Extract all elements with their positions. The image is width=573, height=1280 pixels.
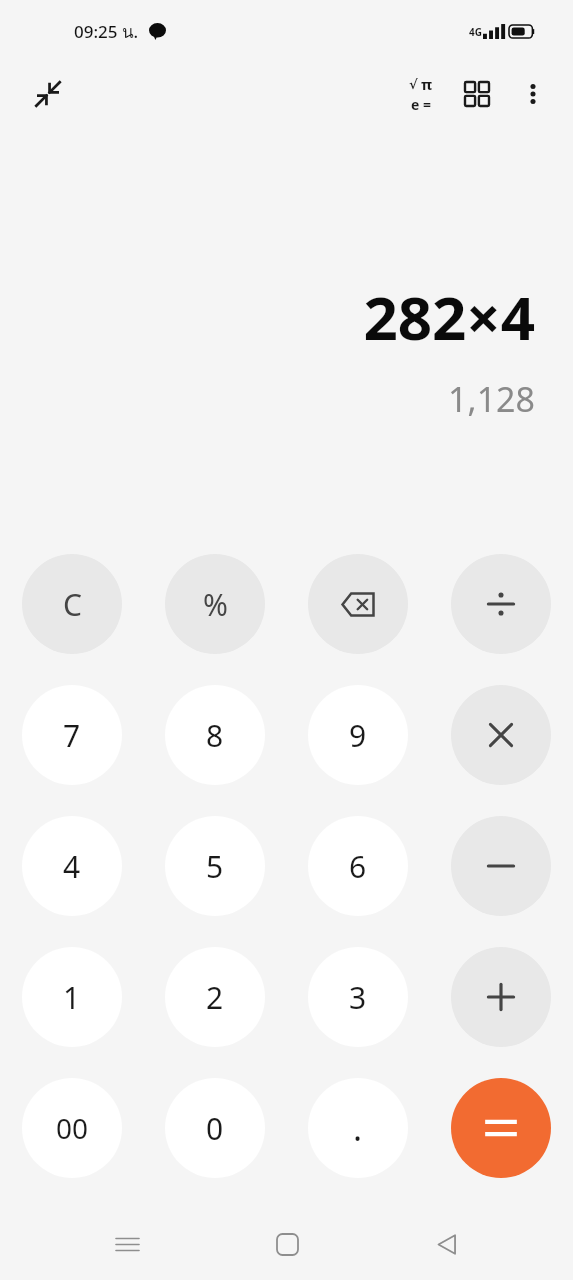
button[interactable]: 6 — [308, 816, 408, 916]
button[interactable]: Collapse — [22, 68, 74, 120]
button[interactable]: 9 — [308, 685, 408, 785]
button[interactable]: History grid — [449, 66, 505, 122]
staticText: 3 — [349, 977, 367, 1018]
staticText: = — [423, 95, 432, 114]
button[interactable]: Plus — [451, 947, 551, 1047]
staticText: 7 — [63, 715, 81, 756]
staticText: 00 — [56, 1109, 89, 1147]
button[interactable]: Multiply — [451, 685, 551, 785]
staticText: √ — [409, 77, 418, 92]
button[interactable]: Equals — [451, 1078, 551, 1178]
staticText: 282×4 — [363, 276, 535, 358]
button[interactable]: 00 — [22, 1078, 122, 1178]
staticText: 4 — [63, 846, 81, 887]
button[interactable]: Backspace — [308, 554, 408, 654]
staticText: 09:25 น. — [74, 18, 139, 45]
button[interactable]: Divide — [451, 554, 551, 654]
staticText: 2 — [206, 977, 224, 1018]
button[interactable]: 7 — [22, 685, 122, 785]
button[interactable]: 1 — [22, 947, 122, 1047]
button[interactable]: Minus — [451, 816, 551, 916]
button[interactable]: 8 — [165, 685, 265, 785]
button[interactable]: 3 — [308, 947, 408, 1047]
staticText: % — [203, 584, 228, 625]
staticText: e — [411, 95, 420, 114]
button[interactable]: 5 — [165, 816, 265, 916]
staticText: 1 — [63, 977, 81, 1018]
button[interactable]: Home — [255, 1212, 319, 1276]
button[interactable]: Percent — [165, 554, 265, 654]
button[interactable]: Scientific mode — [393, 66, 449, 122]
button[interactable]: . — [308, 1078, 408, 1178]
staticText: 1,128 — [448, 376, 535, 422]
staticText: . — [353, 1105, 363, 1151]
button[interactable]: More options — [505, 66, 561, 122]
staticText: 4G — [469, 25, 482, 39]
staticText: 0 — [206, 1108, 224, 1149]
staticText: 5 — [206, 846, 224, 887]
button[interactable]: 0 — [165, 1078, 265, 1178]
button[interactable]: Recents — [95, 1212, 159, 1276]
button[interactable]: 4 — [22, 816, 122, 916]
button[interactable]: C — [22, 554, 122, 654]
staticText: C — [63, 584, 82, 625]
button[interactable]: Back — [414, 1212, 478, 1276]
staticText: 9 — [349, 715, 367, 756]
staticText: 8 — [206, 715, 224, 756]
button[interactable]: 2 — [165, 947, 265, 1047]
staticText: 6 — [349, 846, 367, 887]
staticText: π — [421, 74, 433, 94]
